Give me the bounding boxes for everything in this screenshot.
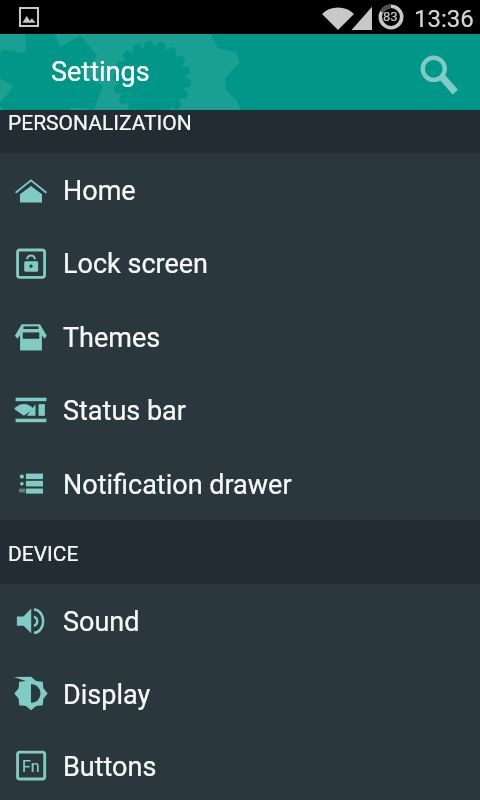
staticText: DEVICE — [8, 542, 79, 567]
button[interactable]: Status bar — [0, 373, 480, 447]
staticText: Status bar — [63, 395, 186, 427]
button[interactable]: Home — [0, 153, 480, 226]
button[interactable]: Themes — [0, 300, 480, 373]
staticText: Home — [63, 175, 136, 207]
staticText: Settings — [51, 56, 150, 88]
staticText: Buttons — [63, 751, 157, 783]
staticText: Notification drawer — [63, 469, 292, 501]
staticText: Sound — [63, 606, 140, 638]
staticText: Themes — [63, 322, 161, 354]
button[interactable]: Notification drawer — [0, 447, 480, 520]
button[interactable]: Display — [0, 657, 480, 731]
staticText: 13:36 — [414, 5, 474, 33]
button[interactable]: Lock screen — [0, 226, 480, 300]
button[interactable]: Fn — [0, 731, 480, 800]
button[interactable]: Sound — [0, 584, 480, 657]
button[interactable]: Search — [410, 34, 476, 110]
staticText: Display — [63, 679, 151, 711]
staticText: PERSONALIZATION — [8, 111, 192, 136]
staticText: Lock screen — [63, 248, 208, 280]
staticText: 83 — [383, 9, 398, 24]
staticText: Fn — [22, 757, 40, 776]
